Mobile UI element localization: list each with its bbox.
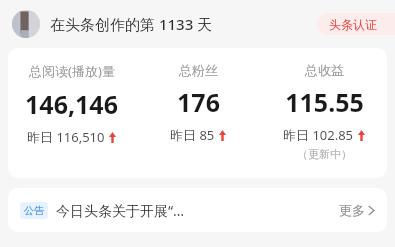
staticText: 总收益 <box>305 62 344 78</box>
button[interactable]: 总收益 <box>261 62 387 161</box>
button[interactable]: 总阅读(播放)量 <box>8 62 135 146</box>
button[interactable]: 总粉丝 <box>135 62 261 144</box>
staticText: 总粉丝 <box>179 62 218 78</box>
staticText: 在头条创作的第 1133 天 <box>50 14 213 34</box>
button[interactable]: 总阅读(播放)量 <box>8 48 387 178</box>
staticText: 今日头条关于开展“清朗·整治AI技术... <box>56 201 194 220</box>
button[interactable]: 更多 <box>333 202 375 218</box>
staticText: 昨日 102.85 <box>283 126 354 144</box>
button[interactable]: 公告 <box>8 188 387 232</box>
staticText: 更多 <box>339 202 365 218</box>
staticText: 115.55 <box>285 85 364 119</box>
staticText: 146,146 <box>25 87 118 121</box>
button[interactable]: Avatar <box>12 10 40 38</box>
staticText: 公告 <box>24 204 44 217</box>
staticText: 头条认证 <box>329 17 377 32</box>
staticText: 昨日 116,510 <box>27 128 105 146</box>
staticText: 总阅读(播放)量 <box>29 62 115 80</box>
staticText: （更新中） <box>297 147 352 161</box>
staticText: 176 <box>177 85 220 119</box>
button[interactable]: 头条认证 <box>317 13 395 35</box>
staticText: 昨日 85 <box>170 126 215 144</box>
